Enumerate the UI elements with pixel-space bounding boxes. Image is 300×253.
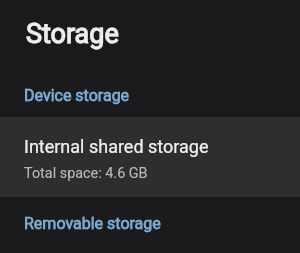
button[interactable]: Internal shared storage bbox=[0, 117, 300, 197]
button[interactable]: Removable storage bbox=[0, 197, 300, 253]
staticText: Removable storage bbox=[24, 214, 161, 233]
staticText: Internal shared storage bbox=[24, 136, 209, 157]
staticText: Device storage bbox=[24, 86, 130, 105]
staticText: Total space: 4.6 GB bbox=[24, 165, 148, 182]
button[interactable]: Storage bbox=[0, 0, 300, 72]
other: Storage settings bbox=[0, 0, 300, 253]
button[interactable]: Device storage bbox=[0, 72, 300, 117]
staticText: Storage bbox=[26, 18, 119, 50]
